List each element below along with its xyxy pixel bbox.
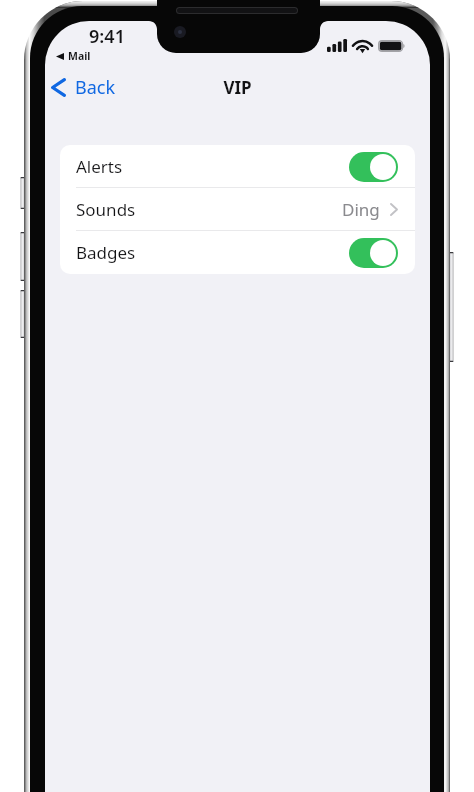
staticText: VIP: [45, 76, 430, 99]
staticText: Sounds: [76, 198, 136, 221]
button[interactable]: Badges: [60, 231, 415, 274]
staticText: Mail: [68, 49, 91, 63]
button[interactable]: Toggle: [349, 238, 398, 268]
button[interactable]: Toggle: [349, 152, 398, 182]
staticText: Badges: [76, 241, 136, 264]
button[interactable]: Mail: [56, 49, 91, 63]
button[interactable]: Sounds: [60, 188, 415, 231]
staticText: Alerts: [76, 155, 123, 178]
staticText: 9:41: [83, 24, 131, 49]
staticText: Back: [75, 75, 116, 100]
staticText: Ding: [342, 198, 380, 221]
button[interactable]: Back: [45, 69, 126, 105]
button[interactable]: Alerts: [60, 145, 415, 188]
